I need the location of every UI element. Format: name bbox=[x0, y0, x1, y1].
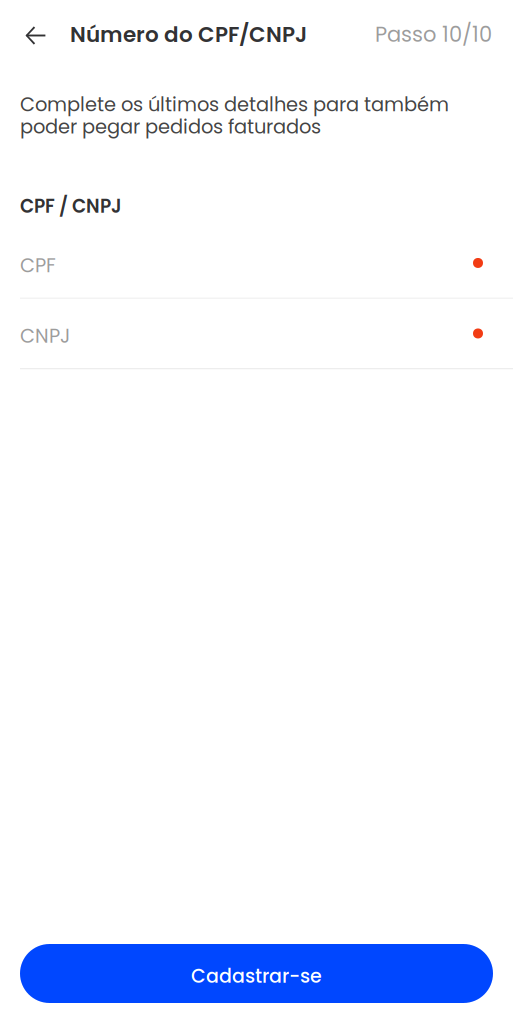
staticText: CNPJ bbox=[20, 322, 70, 350]
button[interactable]: CNPJ bbox=[0, 299, 513, 369]
staticText: CPF / CNPJ bbox=[20, 193, 122, 219]
button[interactable]: Back bbox=[0, 12, 58, 56]
staticText: CPF bbox=[20, 252, 56, 279]
button[interactable]: Cadastrar-se bbox=[20, 944, 493, 1003]
staticText: Passo 10/10 bbox=[375, 20, 492, 49]
staticText: Complete os últimos detalhes para também… bbox=[20, 91, 449, 140]
staticText: Cadastrar-se bbox=[191, 963, 322, 989]
staticText: Número do CPF/CNPJ bbox=[70, 19, 307, 49]
button[interactable]: CPF bbox=[0, 228, 513, 299]
